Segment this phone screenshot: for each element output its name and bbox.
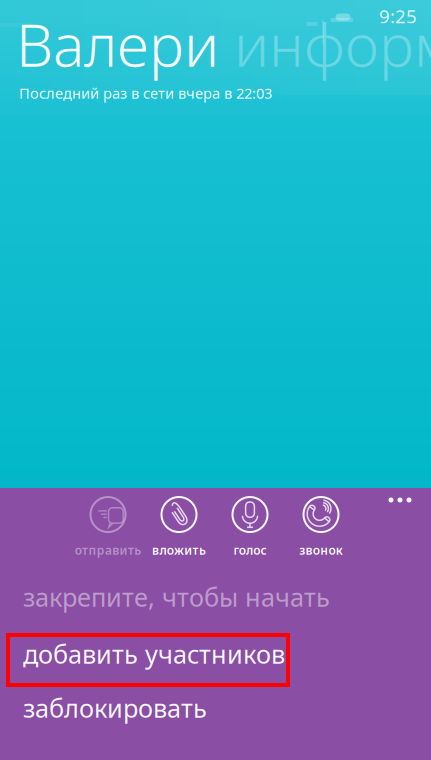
staticText: Последний раз в сети вчера в 22:03 <box>19 83 272 103</box>
button[interactable]: закрепите, чтобы начать <box>0 571 431 623</box>
staticText: голос <box>233 542 267 558</box>
staticText: вложить <box>152 542 206 558</box>
staticText: звонок <box>299 542 343 558</box>
staticText: добавить участников <box>23 637 285 671</box>
staticText: закрепите, чтобы начать <box>23 580 330 614</box>
staticText: информ <box>219 5 431 83</box>
button[interactable]: More options <box>377 485 423 515</box>
button[interactable]: голос <box>215 496 285 558</box>
staticText: заблокировать <box>23 691 207 725</box>
staticText: Валери <box>16 5 219 83</box>
button[interactable]: вложить <box>144 496 214 558</box>
button[interactable]: отправить <box>73 496 143 558</box>
button[interactable]: добавить участников <box>0 628 431 680</box>
staticText: отправить <box>75 542 141 558</box>
button[interactable]: заблокировать <box>0 682 431 734</box>
staticText: 9:25 <box>379 4 417 28</box>
button[interactable]: звонок <box>286 496 356 558</box>
